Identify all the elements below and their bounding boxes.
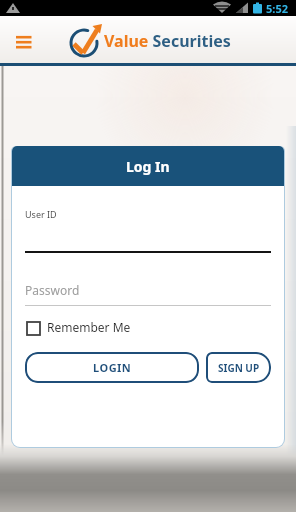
button[interactable]: LOGIN: [25, 352, 199, 383]
staticText: SIGN UP: [218, 361, 260, 375]
staticText: 5:52: [266, 1, 288, 16]
button[interactable]: Password: [25, 282, 80, 298]
staticText: User ID: [25, 208, 57, 220]
staticText: LOGIN: [93, 360, 132, 375]
staticText: Remember Me: [47, 319, 131, 335]
button[interactable]: [8, 29, 40, 57]
staticText: Log In: [126, 157, 170, 176]
staticText: Value Securities: [104, 30, 231, 52]
button[interactable]: SIGN UP: [206, 352, 271, 383]
button[interactable]: Remember Me: [25, 318, 155, 338]
